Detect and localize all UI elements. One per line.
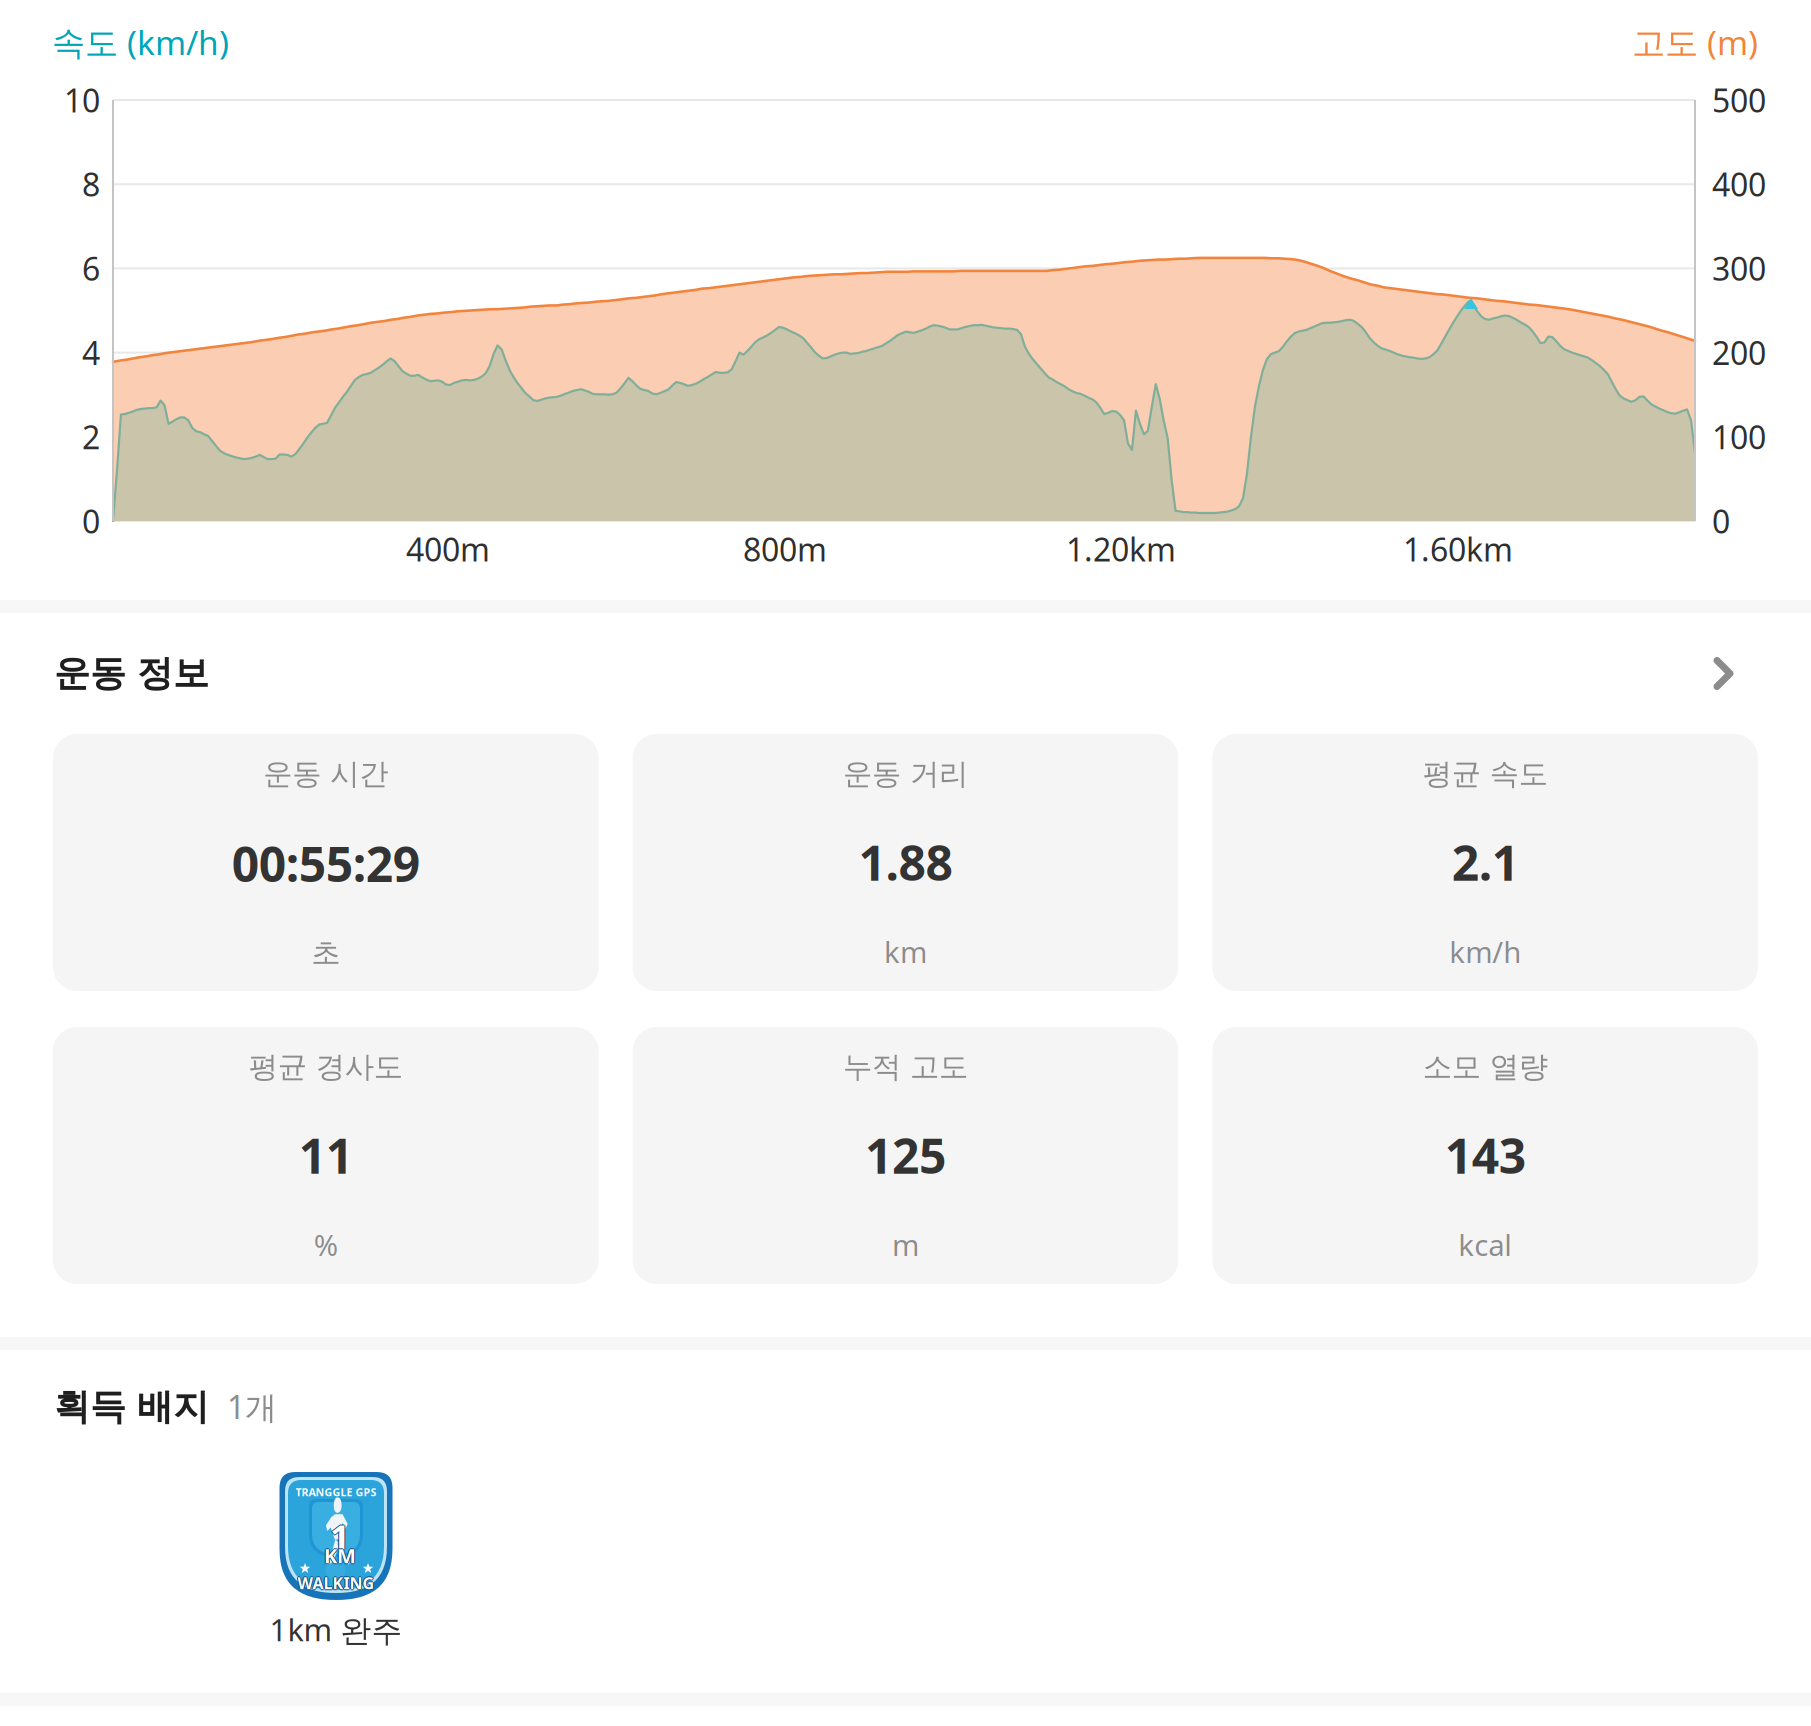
button[interactable]: 소모 열량 [1212, 1027, 1758, 1284]
staticText: WALKING [297, 1573, 374, 1595]
staticText: 소모 열량 [1423, 1049, 1548, 1085]
staticText: 1.20km [1066, 528, 1176, 570]
staticText: WALKING [297, 1571, 374, 1593]
staticText: KM [325, 1542, 357, 1569]
staticText: 속도 (km/h) [52, 20, 229, 64]
staticText: 100 [1712, 416, 1766, 458]
staticText: 1km 완주 [269, 1609, 402, 1650]
staticText: 200 [1712, 331, 1766, 374]
staticText: % [314, 1225, 338, 1264]
staticText: 1 [331, 1513, 351, 1559]
staticText: 10 [64, 79, 100, 121]
staticText: WALKING [298, 1572, 375, 1594]
staticText: 누적 고도 [843, 1049, 968, 1085]
button[interactable]: 평균 경사도 [53, 1027, 599, 1284]
staticText: 1.88 [858, 830, 952, 894]
staticText: m [892, 1225, 919, 1264]
staticText: KM [323, 1542, 355, 1569]
staticText: km/h [1449, 932, 1521, 971]
staticText: 4 [82, 331, 100, 374]
staticText: KM [324, 1542, 356, 1569]
button[interactable]: TRANGGLE GPS [236, 1472, 436, 1657]
staticText: 11 [299, 1123, 353, 1187]
staticText: 800m [743, 528, 827, 570]
button[interactable]: 운동 거리 [633, 734, 1178, 991]
button[interactable]: 누적 고도 [633, 1027, 1178, 1284]
staticText: 운동 정보 [54, 651, 209, 696]
staticText: 초 [311, 935, 340, 971]
staticText: 1개 [227, 1385, 277, 1428]
staticText: 평균 경사도 [249, 1049, 403, 1085]
staticText: WALKING [297, 1572, 374, 1594]
staticText: 1 [329, 1513, 349, 1559]
staticText: 500 [1712, 79, 1766, 121]
button[interactable]: 평균 속도 [1212, 734, 1758, 991]
staticText: 0 [1712, 500, 1730, 542]
staticText: km [884, 932, 927, 971]
staticText: 2 [82, 416, 100, 458]
staticText: 8 [82, 163, 100, 205]
staticText: 6 [82, 247, 100, 290]
staticText: 1 [330, 1514, 350, 1560]
staticText: 2.1 [1452, 830, 1519, 894]
staticText: 획득 배지 [54, 1385, 209, 1429]
staticText: 1 [330, 1513, 350, 1559]
staticText: 0 [82, 500, 100, 542]
staticText: TRANGGLE GPS [295, 1485, 376, 1499]
staticText: 운동 시간 [263, 756, 388, 792]
staticText: 1.60km [1403, 528, 1513, 570]
staticText: 평균 속도 [1423, 756, 1548, 792]
staticText: KM [324, 1543, 356, 1570]
staticText: WALKING [296, 1572, 373, 1594]
staticText: 00:55:29 [232, 832, 420, 895]
button[interactable]: 운동 시간 [53, 734, 599, 991]
staticText: 고도 (m) [1632, 20, 1758, 64]
staticText: 300 [1712, 247, 1766, 290]
staticText: 125 [865, 1123, 946, 1187]
button[interactable]: 운동 정보 [0, 613, 1811, 734]
staticText: kcal [1458, 1225, 1512, 1264]
staticText: 1 [330, 1512, 350, 1558]
staticText: 운동 거리 [843, 756, 968, 792]
staticText: 400 [1712, 163, 1766, 205]
staticText: 400m [406, 528, 490, 570]
staticText: 143 [1445, 1123, 1526, 1187]
staticText: KM [324, 1541, 356, 1568]
